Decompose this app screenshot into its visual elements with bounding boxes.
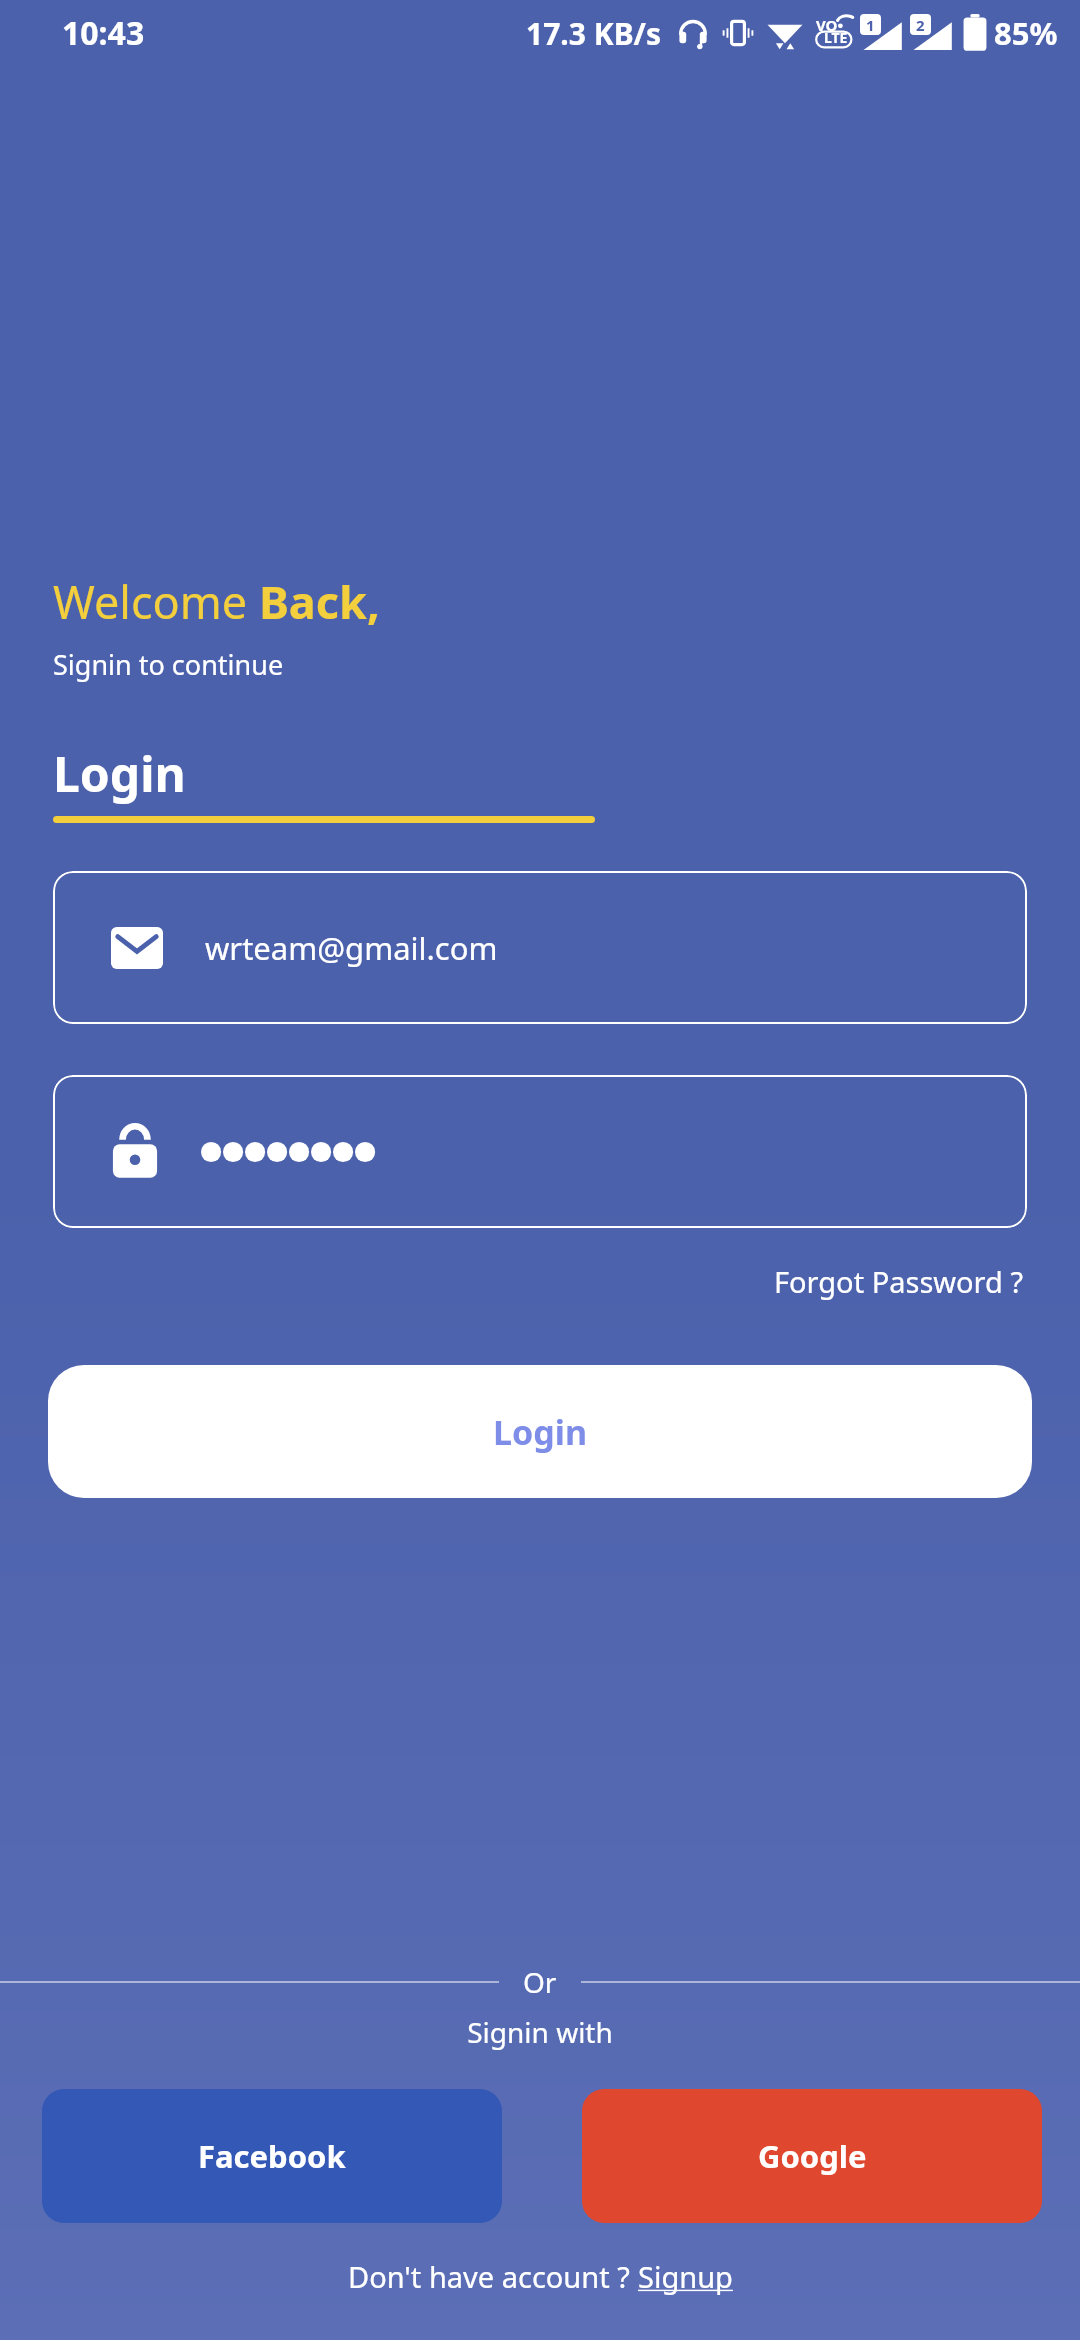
staticText: 85% xyxy=(994,12,1058,54)
staticText: Don't have account ? xyxy=(348,2257,638,2296)
staticText: wrteam@gmail.com xyxy=(205,927,498,969)
staticText: 10:43 xyxy=(62,11,145,55)
staticText: Google xyxy=(758,2135,867,2177)
button[interactable] xyxy=(53,1075,1027,1228)
button[interactable]: Google xyxy=(582,2089,1042,2223)
staticText: Welcome Back, xyxy=(53,571,380,632)
staticText: Forgot Password ? xyxy=(774,1262,1023,1301)
staticText: VO xyxy=(816,15,838,35)
button[interactable]: wrteam@gmail.com xyxy=(53,871,1027,1024)
staticText: Or xyxy=(523,1963,557,2001)
staticText: 2 xyxy=(916,15,925,35)
button[interactable]: Signup xyxy=(638,2257,733,2296)
staticText: Login xyxy=(53,741,186,806)
staticText: Signin with xyxy=(0,2013,1080,2051)
staticText: 17.3 KB/s xyxy=(526,13,662,54)
staticText: Signup xyxy=(638,2257,733,2296)
staticText: Signin to continue xyxy=(53,646,284,683)
button[interactable]: Login xyxy=(48,1365,1032,1498)
staticText: Facebook xyxy=(198,2135,346,2177)
staticText: 1 xyxy=(866,15,875,35)
button[interactable]: Forgot Password ? xyxy=(770,1256,1027,1307)
staticText: LTE xyxy=(824,28,848,47)
staticText: Login xyxy=(493,1409,588,1455)
button[interactable]: Facebook xyxy=(42,2089,502,2223)
